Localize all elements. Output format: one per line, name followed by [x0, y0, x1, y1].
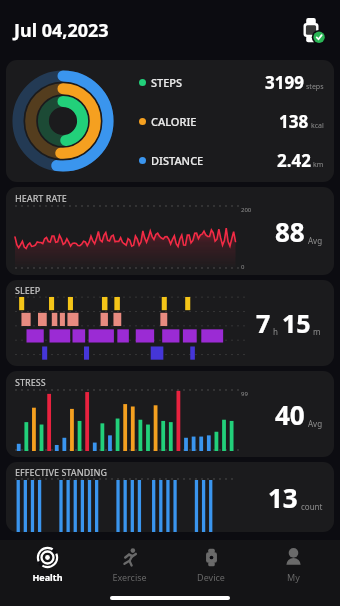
staticText: Exercise: [112, 571, 147, 583]
staticText: 88: [275, 214, 305, 249]
button[interactable]: STRESS: [6, 371, 334, 457]
button[interactable]: EFFECTIVE STANDING: [6, 462, 334, 532]
staticText: Health: [32, 571, 63, 583]
staticText: 7: [256, 306, 271, 340]
staticText: count: [301, 501, 323, 512]
button[interactable]: Health: [12, 544, 82, 586]
staticText: steps: [306, 82, 324, 92]
staticText: STEPS: [151, 75, 183, 90]
staticText: DISTANCE: [151, 153, 204, 168]
button[interactable]: Exercise: [94, 544, 164, 586]
staticText: 2.42: [277, 149, 311, 172]
staticText: 15: [282, 306, 311, 340]
staticText: 138: [279, 110, 309, 133]
staticText: kcal: [311, 121, 324, 131]
staticText: 3199: [265, 71, 304, 94]
staticText: STRESS: [15, 376, 46, 388]
staticText: 40: [275, 397, 305, 432]
staticText: My: [287, 571, 300, 583]
staticText: HEART RATE: [15, 192, 67, 204]
staticText: Avg: [308, 418, 323, 429]
staticText: m: [313, 326, 321, 337]
staticText: Jul 04,2023: [14, 18, 109, 43]
staticText: 200: [241, 206, 252, 214]
staticText: EFFECTIVE STANDING: [15, 466, 107, 478]
button[interactable]: Connected watch: [296, 15, 326, 45]
button[interactable]: Device: [176, 544, 246, 586]
staticText: 0: [241, 263, 245, 271]
staticText: Avg: [308, 235, 323, 246]
staticText: 99: [241, 390, 248, 398]
staticText: Device: [197, 571, 225, 583]
staticText: SLEEP: [15, 284, 41, 296]
staticText: h: [273, 326, 278, 337]
button[interactable]: STEPS: [6, 60, 334, 182]
button[interactable]: My: [258, 544, 328, 586]
staticText: CALORIE: [151, 114, 197, 129]
button[interactable]: HEART RATE: [6, 187, 334, 275]
staticText: km: [313, 160, 324, 170]
button[interactable]: SLEEP: [6, 280, 334, 366]
staticText: 13: [268, 480, 298, 515]
